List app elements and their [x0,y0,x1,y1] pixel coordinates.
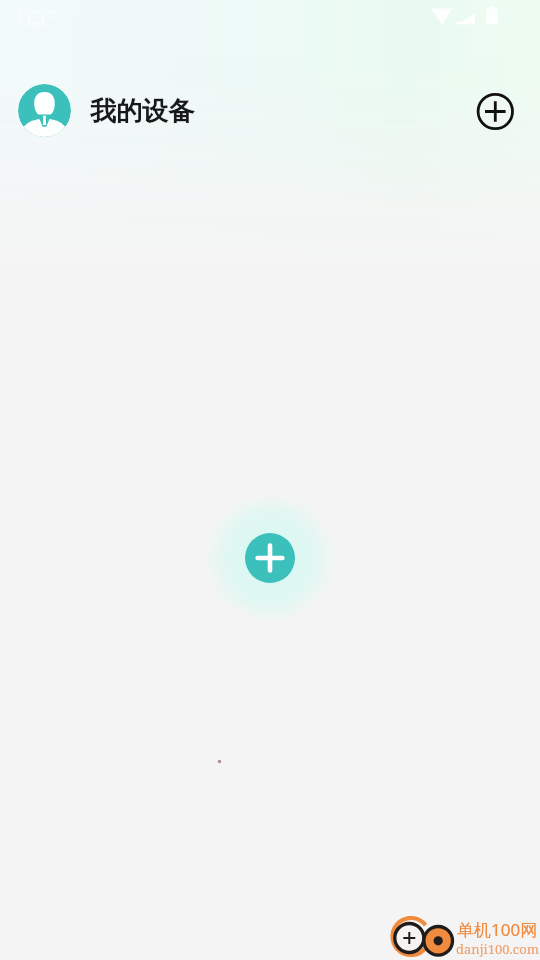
staticText: danji100.com [456,940,539,958]
staticText: 我的设备 [90,95,194,128]
staticText: 单机100网 [457,918,538,941]
button[interactable]: Add device [245,533,295,583]
button[interactable]: Profile [18,84,71,137]
button[interactable]: Add device [473,89,518,134]
